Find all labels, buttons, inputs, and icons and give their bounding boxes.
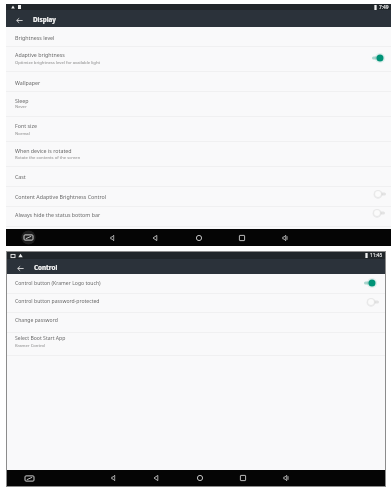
staticText: Sleep xyxy=(15,97,29,104)
staticText: 7:49 xyxy=(379,4,389,10)
staticText: Always hide the status bottom bar xyxy=(15,211,101,218)
button[interactable]: Screenshot xyxy=(21,230,36,245)
button[interactable] xyxy=(6,117,391,141)
button[interactable] xyxy=(7,313,385,332)
button[interactable]: Switch off xyxy=(361,296,381,308)
staticText: Change password xyxy=(15,317,58,324)
button[interactable]: Back xyxy=(12,13,26,27)
staticText: Control button (Kramer Logo touch) xyxy=(15,280,101,287)
staticText: Brightness level xyxy=(15,34,55,41)
staticText: Normal xyxy=(15,131,30,137)
button[interactable] xyxy=(6,142,391,166)
button[interactable]: Volume up xyxy=(279,471,293,485)
button[interactable]: Recent apps xyxy=(236,471,250,485)
button[interactable] xyxy=(6,92,391,116)
button[interactable]: Switch on xyxy=(370,52,390,64)
button[interactable]: Volume up xyxy=(278,231,292,245)
button[interactable] xyxy=(7,294,385,312)
button[interactable]: Home xyxy=(193,471,207,485)
button[interactable]: Recent apps xyxy=(235,231,249,245)
staticText: Never xyxy=(15,104,27,110)
button[interactable]: Volume down xyxy=(106,231,120,245)
button[interactable]: Back xyxy=(148,231,162,245)
staticText: Control xyxy=(34,263,58,272)
button[interactable]: Switch off xyxy=(368,188,388,200)
button[interactable]: Screenshot xyxy=(22,471,37,486)
button[interactable] xyxy=(7,333,385,354)
staticText: Wallpaper xyxy=(15,79,41,86)
button[interactable]: Switch on xyxy=(362,277,382,289)
button[interactable]: Switch off xyxy=(367,207,387,219)
button[interactable] xyxy=(6,207,391,226)
staticText: Cast xyxy=(15,173,26,180)
staticText: Control button password-protected xyxy=(15,298,100,305)
button[interactable]: Back xyxy=(13,261,27,275)
button[interactable] xyxy=(6,72,391,91)
staticText: Adaptive brightness xyxy=(15,51,65,58)
button[interactable] xyxy=(7,274,385,293)
staticText: 11:45 xyxy=(370,252,383,259)
staticText: Kramer Control xyxy=(15,343,46,349)
button[interactable]: Volume down xyxy=(107,471,121,485)
button[interactable] xyxy=(6,167,391,186)
staticText: Select Boot Start App xyxy=(15,335,66,342)
button[interactable] xyxy=(6,187,391,206)
staticText: Content Adaptive Brightness Control xyxy=(15,193,107,200)
button[interactable] xyxy=(6,47,391,71)
button[interactable]: Home xyxy=(192,231,206,245)
staticText: Display xyxy=(33,15,56,24)
staticText: Font size xyxy=(15,122,37,129)
staticText: Optimize brightness level for available … xyxy=(15,60,101,66)
staticText: Rotate the contents of the screen xyxy=(15,155,81,161)
button[interactable] xyxy=(6,27,391,46)
staticText: When device is rotated xyxy=(15,147,72,154)
button[interactable]: Back xyxy=(149,471,163,485)
